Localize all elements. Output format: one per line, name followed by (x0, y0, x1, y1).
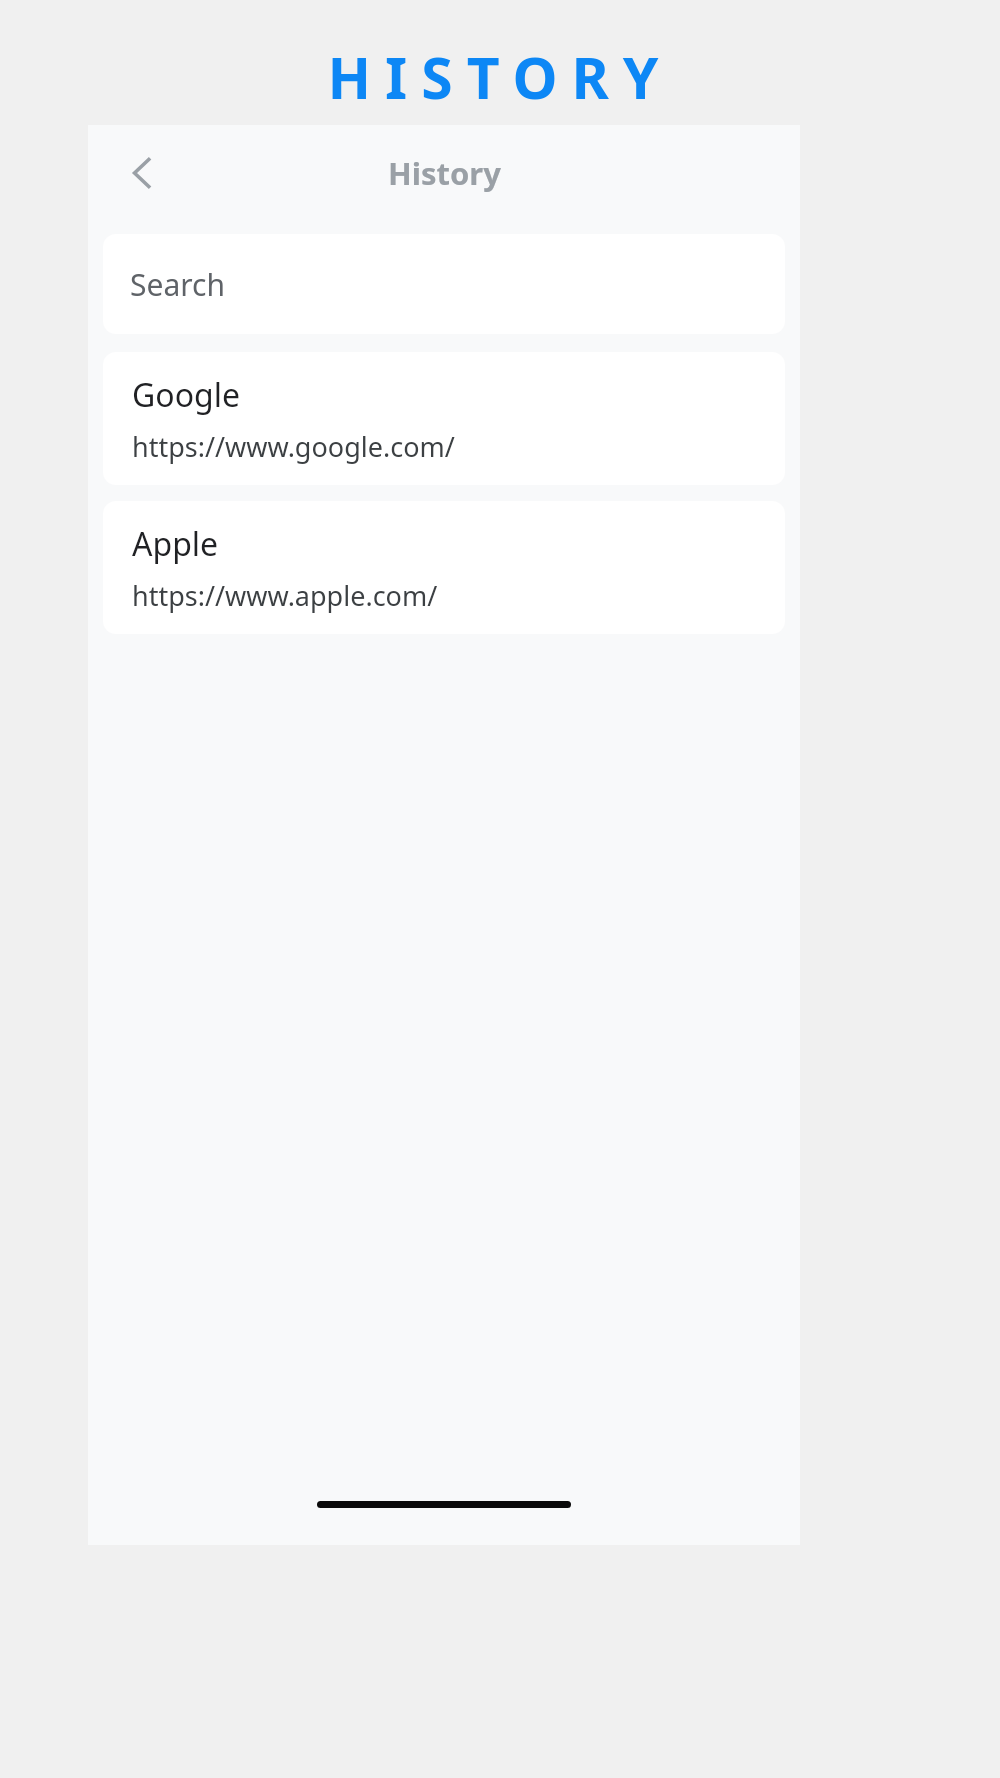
staticText: Search (130, 264, 225, 305)
button[interactable]: Apple (103, 501, 785, 634)
button[interactable]: Google (103, 352, 785, 485)
staticText: Apple (132, 522, 219, 566)
staticText: https://www.apple.com/ (132, 577, 438, 614)
staticText: HISTORY (0, 38, 1000, 116)
button[interactable]: Search (103, 234, 785, 334)
staticText: https://www.google.com/ (132, 428, 455, 465)
staticText: Google (132, 373, 241, 417)
button[interactable]: Back (106, 137, 178, 209)
staticText: History (388, 152, 501, 194)
